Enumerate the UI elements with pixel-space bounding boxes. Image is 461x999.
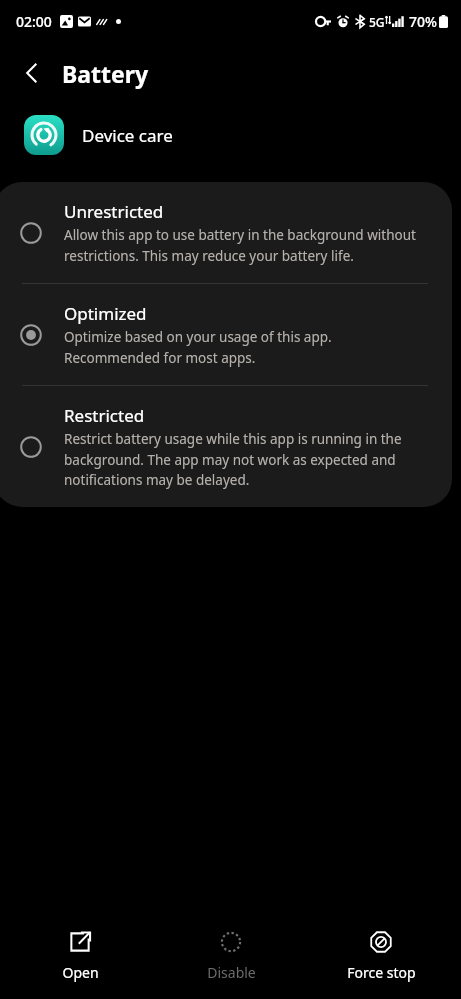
button[interactable]: Disable	[161, 924, 301, 988]
staticText: Force stop	[347, 963, 416, 982]
button[interactable]: Force stop	[311, 924, 451, 988]
staticText: Optimized	[64, 302, 147, 325]
staticText: Disable	[207, 963, 256, 982]
staticText: Open	[62, 963, 99, 982]
staticText: Unrestricted	[64, 200, 164, 223]
button[interactable]: Restricted	[0, 386, 452, 507]
staticText: 02:00	[16, 12, 52, 31]
staticText: Allow this app to use battery in the bac…	[64, 226, 428, 265]
staticText: Restricted	[64, 404, 145, 427]
button[interactable]: Unrestricted	[0, 182, 452, 283]
staticText: Optimize based on your usage of this app…	[64, 328, 428, 367]
staticText: 5G	[369, 14, 385, 30]
button[interactable]: Device care	[0, 104, 461, 166]
staticText: Restrict battery usage while this app is…	[64, 430, 428, 489]
button[interactable]: Open	[10, 924, 150, 988]
staticText: Battery	[62, 58, 149, 89]
staticText: 70%	[409, 12, 437, 31]
button[interactable]: Optimized	[0, 284, 452, 385]
button[interactable]: Back	[10, 51, 54, 95]
staticText: Device care	[82, 124, 173, 147]
